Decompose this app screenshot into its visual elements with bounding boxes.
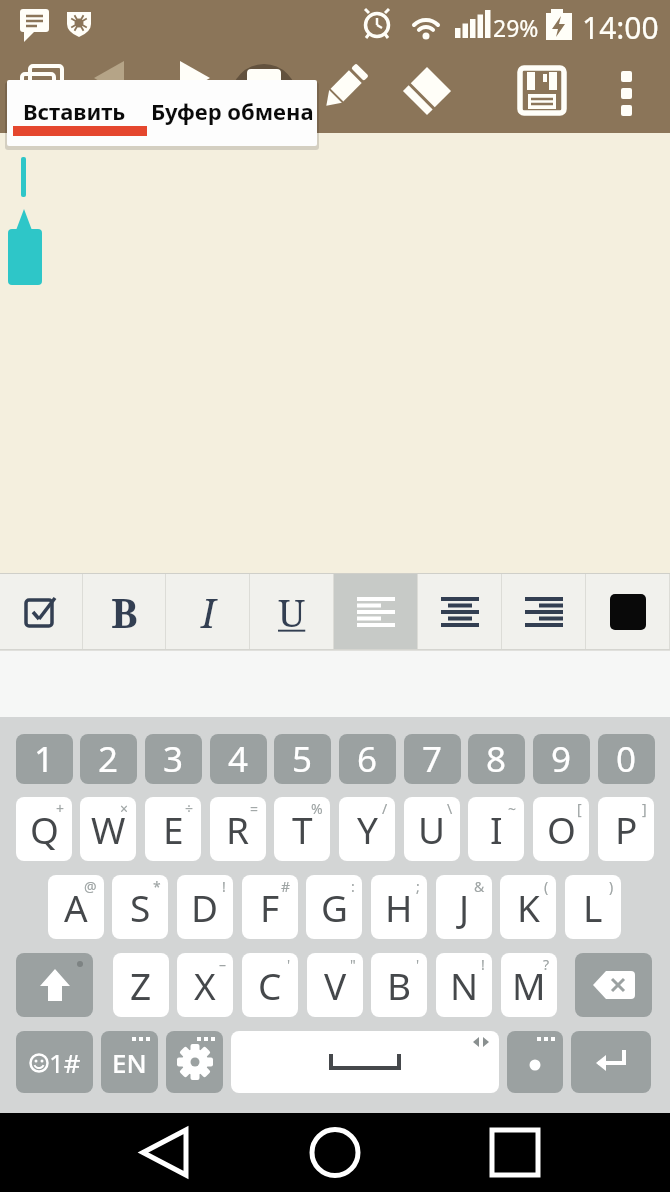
staticText: Y bbox=[357, 804, 378, 854]
button[interactable] bbox=[334, 574, 418, 649]
staticText: ( bbox=[544, 877, 549, 896]
button[interactable]: L bbox=[565, 875, 621, 939]
staticText: X bbox=[194, 960, 216, 1010]
button[interactable]: H bbox=[371, 875, 427, 939]
button[interactable]: 8 bbox=[468, 734, 525, 784]
staticText: ! bbox=[222, 877, 226, 896]
staticText: × bbox=[120, 799, 129, 818]
button[interactable] bbox=[507, 1031, 563, 1093]
button[interactable]: J bbox=[436, 875, 492, 939]
button[interactable]: B bbox=[371, 953, 427, 1017]
staticText: Z bbox=[130, 960, 152, 1010]
staticText: # bbox=[281, 877, 291, 896]
button[interactable]: U bbox=[250, 574, 334, 649]
button[interactable]: K bbox=[500, 875, 556, 939]
staticText: U bbox=[418, 804, 446, 854]
button[interactable] bbox=[395, 58, 465, 128]
button[interactable]: 2 bbox=[80, 734, 137, 784]
staticText: – bbox=[219, 955, 226, 974]
button[interactable]: 6 bbox=[339, 734, 396, 784]
staticText: A bbox=[64, 882, 88, 932]
button[interactable] bbox=[0, 574, 83, 649]
button[interactable]: 0 bbox=[598, 734, 655, 784]
button[interactable]: Буфер обмена bbox=[145, 80, 317, 146]
button[interactable]: W bbox=[80, 797, 136, 861]
button[interactable]: N bbox=[436, 953, 492, 1017]
button[interactable]: X bbox=[177, 953, 233, 1017]
button[interactable]: M bbox=[501, 953, 557, 1017]
button[interactable]: 7 bbox=[404, 734, 461, 784]
staticText: B bbox=[387, 960, 412, 1010]
button[interactable]: EN bbox=[101, 1031, 158, 1093]
button[interactable]: P bbox=[598, 797, 654, 861]
button[interactable]: 3 bbox=[145, 734, 202, 784]
staticText: N bbox=[450, 960, 479, 1010]
button[interactable] bbox=[85, 58, 140, 128]
button[interactable]: 1# bbox=[16, 1031, 93, 1093]
staticText: " bbox=[350, 955, 356, 974]
button[interactable]: S bbox=[112, 875, 168, 939]
button[interactable] bbox=[502, 574, 586, 649]
button[interactable] bbox=[595, 58, 655, 128]
button[interactable]: O bbox=[533, 797, 589, 861]
button[interactable]: A bbox=[48, 875, 104, 939]
button[interactable] bbox=[280, 1113, 390, 1192]
button[interactable] bbox=[575, 953, 652, 1017]
staticText: 3 bbox=[163, 735, 184, 783]
button[interactable] bbox=[418, 574, 502, 649]
button[interactable]: C bbox=[242, 953, 298, 1017]
staticText: * bbox=[153, 877, 161, 896]
button[interactable]: E bbox=[145, 797, 201, 861]
button[interactable] bbox=[508, 58, 578, 128]
button[interactable]: I bbox=[468, 797, 524, 861]
staticText: ) bbox=[609, 877, 614, 896]
button[interactable]: F bbox=[242, 875, 298, 939]
staticText: S bbox=[130, 882, 151, 932]
button[interactable]: D bbox=[177, 875, 233, 939]
staticText: Вставить bbox=[23, 96, 126, 126]
staticText: 29% bbox=[493, 12, 539, 43]
button[interactable]: V bbox=[307, 953, 363, 1017]
staticText: 2 bbox=[98, 735, 119, 783]
staticText: K bbox=[517, 882, 540, 932]
button[interactable]: B bbox=[83, 574, 166, 649]
button[interactable] bbox=[310, 58, 380, 128]
button[interactable]: Y bbox=[339, 797, 395, 861]
staticText: T bbox=[292, 804, 313, 854]
button[interactable]: Z bbox=[113, 953, 169, 1017]
staticText: 14:00 bbox=[582, 7, 659, 48]
button[interactable] bbox=[230, 58, 300, 128]
button[interactable] bbox=[166, 1031, 223, 1093]
button[interactable]: 1 bbox=[16, 734, 73, 784]
button[interactable]: G bbox=[306, 875, 362, 939]
button[interactable] bbox=[571, 1031, 651, 1093]
button[interactable]: 5 bbox=[274, 734, 331, 784]
button[interactable] bbox=[170, 58, 225, 128]
staticText: F bbox=[260, 882, 280, 932]
staticText: Q bbox=[30, 804, 59, 854]
staticText: 9 bbox=[551, 735, 572, 783]
button[interactable] bbox=[16, 953, 93, 1017]
staticText: : bbox=[351, 877, 355, 896]
button[interactable]: 4 bbox=[210, 734, 267, 784]
staticText: ] bbox=[642, 799, 647, 818]
button[interactable]: T bbox=[274, 797, 330, 861]
staticText: I bbox=[490, 804, 503, 854]
staticText: ~ bbox=[508, 799, 517, 818]
button[interactable] bbox=[586, 574, 670, 649]
staticText: H bbox=[385, 882, 413, 932]
button[interactable] bbox=[231, 1031, 499, 1093]
button[interactable]: I bbox=[166, 574, 250, 649]
staticText: E bbox=[163, 804, 184, 854]
staticText: 8 bbox=[486, 735, 507, 783]
button[interactable] bbox=[12, 58, 82, 128]
button[interactable]: U bbox=[404, 797, 460, 861]
button[interactable]: Q bbox=[16, 797, 72, 861]
button[interactable] bbox=[440, 1113, 550, 1192]
button[interactable] bbox=[120, 1113, 230, 1192]
staticText: V bbox=[324, 960, 347, 1010]
staticText: 1# bbox=[49, 1045, 81, 1080]
button[interactable]: Вставить bbox=[7, 80, 145, 146]
button[interactable]: R bbox=[210, 797, 266, 861]
button[interactable]: 9 bbox=[533, 734, 590, 784]
